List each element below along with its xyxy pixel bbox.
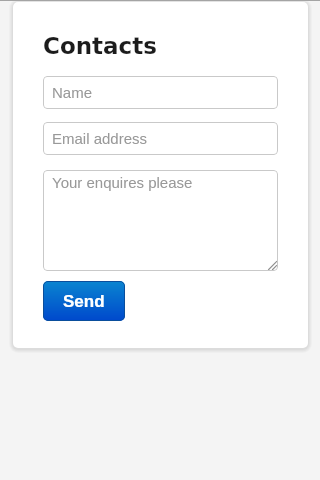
- button[interactable]: Send: [43, 281, 125, 321]
- other: Resize: [268, 261, 277, 270]
- staticText: Send: [63, 292, 105, 311]
- staticText: Name: [52, 84, 93, 101]
- staticText: Your enquires please: [52, 174, 193, 191]
- button[interactable]: Name: [43, 76, 278, 109]
- button[interactable]: Your enquires please: [43, 170, 278, 271]
- staticText: Email address: [52, 130, 148, 147]
- staticText: Contacts: [43, 33, 157, 60]
- button[interactable]: Email address: [43, 122, 278, 155]
